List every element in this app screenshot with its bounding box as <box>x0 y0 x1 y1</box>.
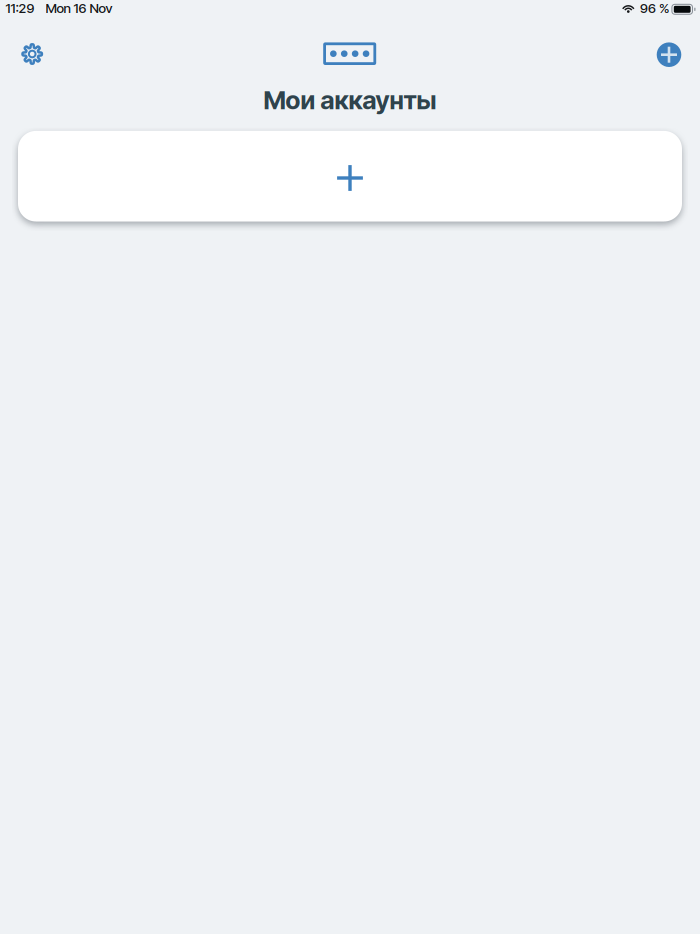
button[interactable]: Settings <box>12 34 52 74</box>
staticText: 96 % <box>640 0 669 16</box>
button[interactable]: Passcode <box>319 34 380 74</box>
staticText: Mon 16 Nov <box>45 0 112 16</box>
button[interactable]: Add account <box>18 131 682 221</box>
staticText: 11:29 <box>5 0 34 16</box>
staticText: Мои аккаунты <box>263 85 436 115</box>
button[interactable]: Add account <box>649 35 689 75</box>
